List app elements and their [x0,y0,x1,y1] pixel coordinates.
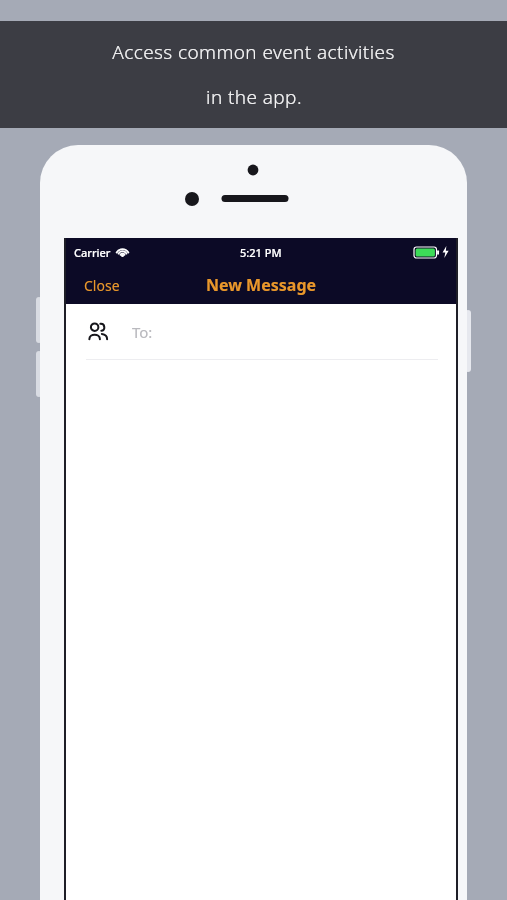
staticText: Access common event activities [112,39,395,65]
button[interactable]: Close [66,269,138,302]
staticText: 5:21 PM [240,245,282,260]
staticText: Close [84,276,120,295]
button[interactable]: Choose contacts [66,304,456,359]
staticText: in the app. [206,84,302,110]
staticText: To: [132,322,153,342]
staticText: Carrier [74,245,111,260]
other: Choose contacts [86,320,110,344]
staticText: New Message [206,274,317,296]
